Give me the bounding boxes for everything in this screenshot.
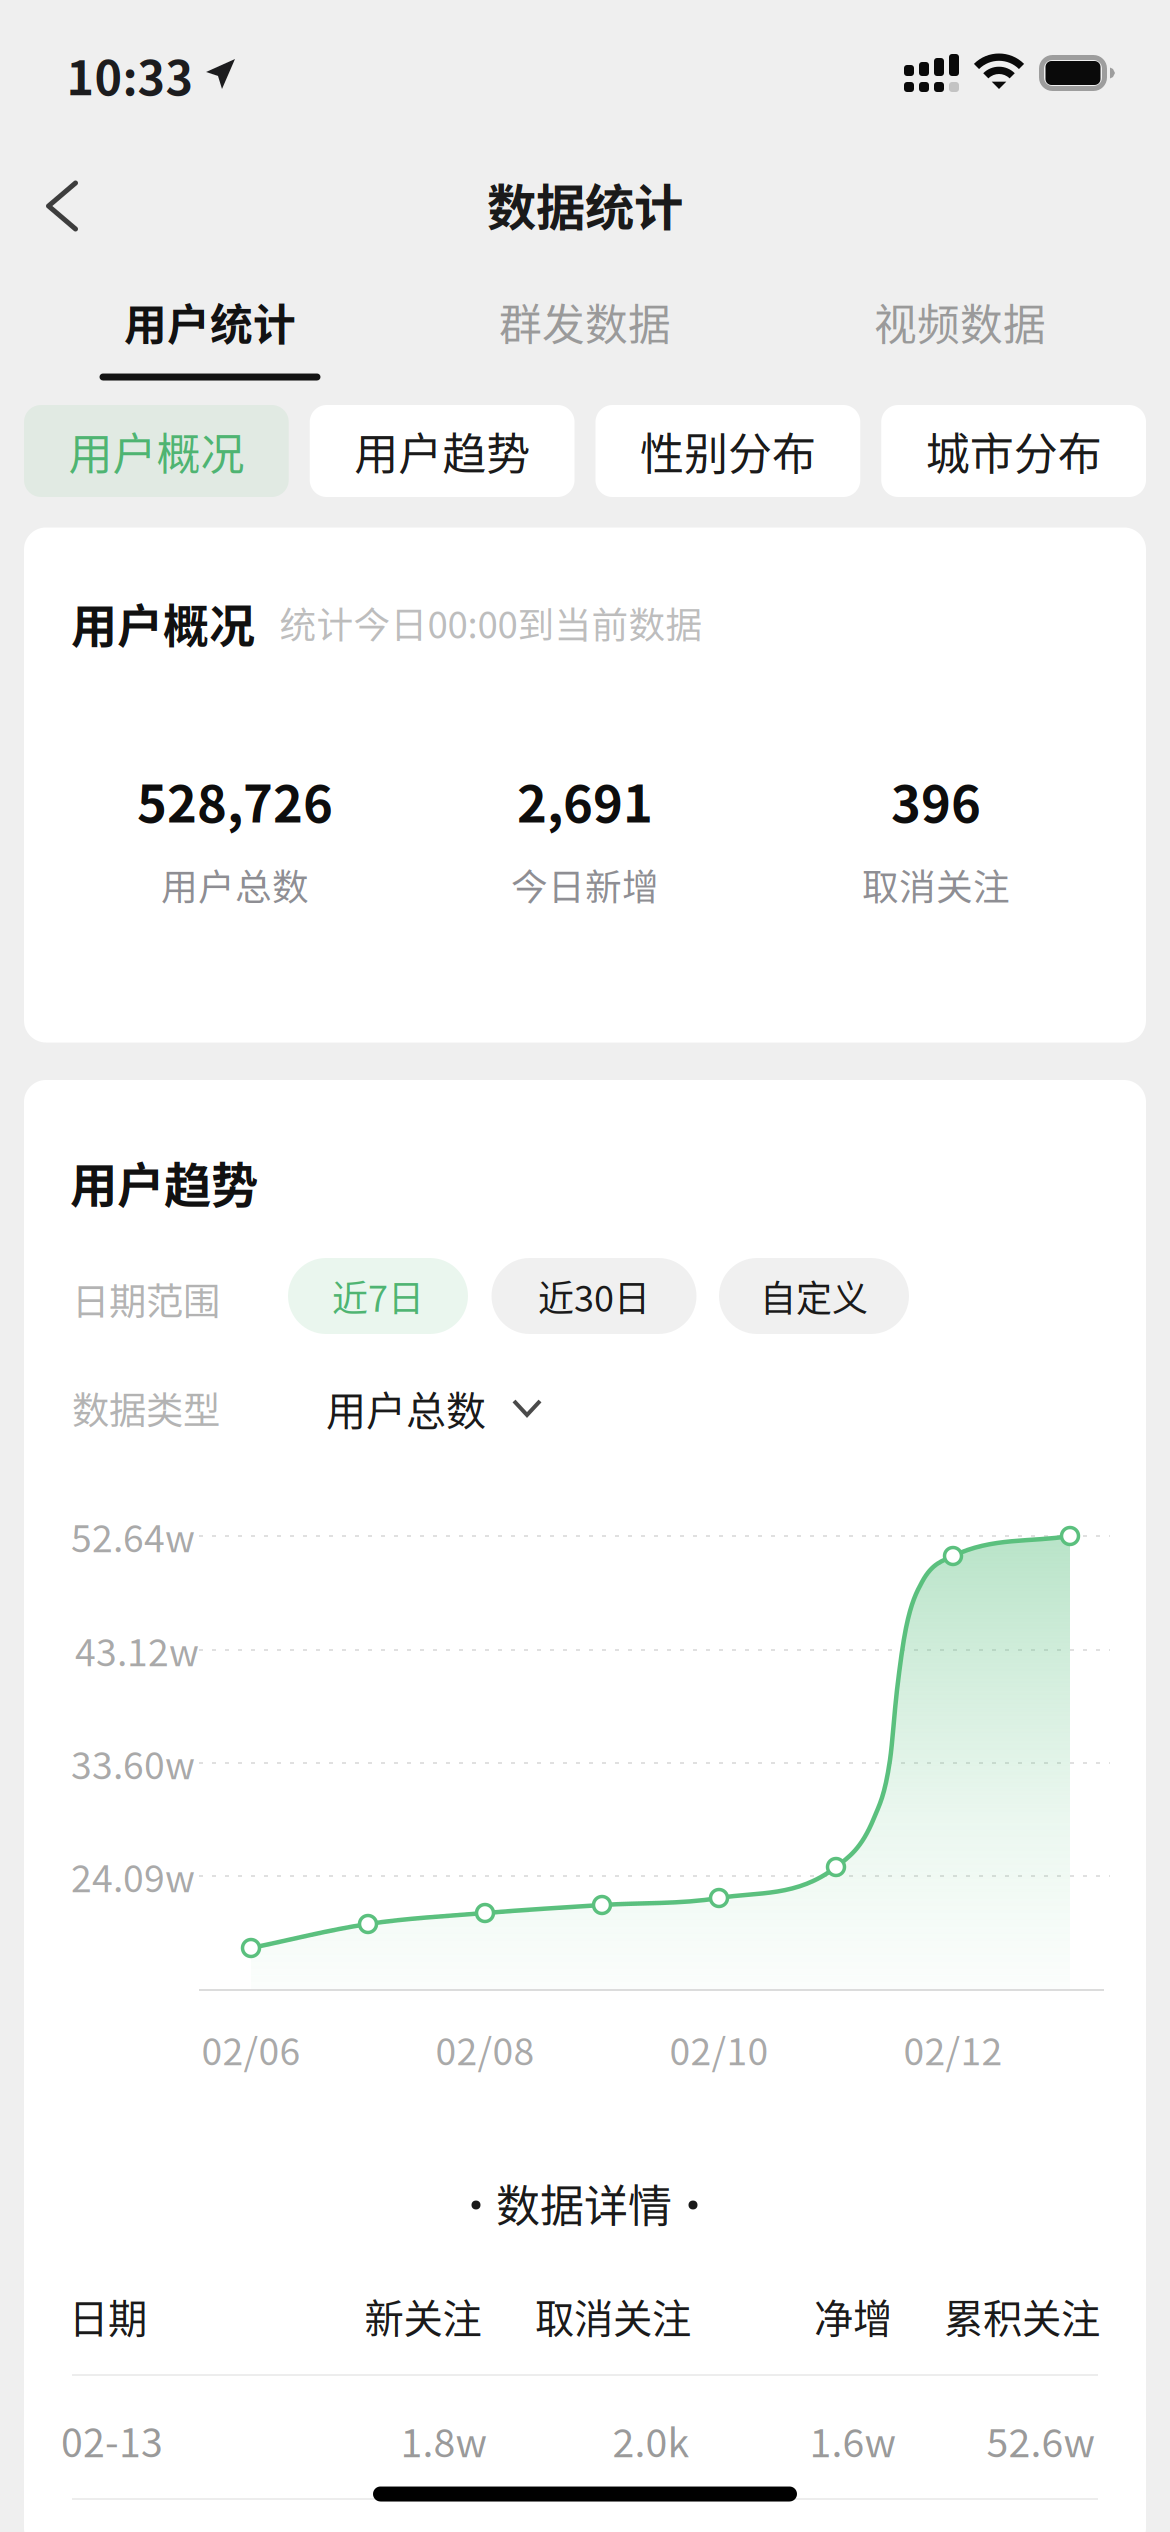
- button[interactable]: 群发数据: [397, 278, 772, 384]
- staticText: 用户概况: [68, 419, 244, 483]
- staticText: 近7日: [332, 1270, 424, 1322]
- staticText: 数据统计: [487, 168, 683, 240]
- staticText: 用户统计: [124, 291, 296, 353]
- staticText: 02/06: [201, 2022, 300, 2076]
- staticText: 统计今日00:00到当前数据: [279, 596, 702, 649]
- staticText: 今日新增: [511, 858, 659, 911]
- staticText: 新关注: [364, 2287, 481, 2344]
- staticText: 净增: [814, 2287, 892, 2344]
- staticText: 528,726: [137, 764, 333, 837]
- button[interactable]: 用户统计: [22, 278, 397, 384]
- staticText: 数据详情: [496, 2171, 672, 2235]
- staticText: 用户趋势: [70, 1148, 258, 1216]
- staticText: 396: [891, 764, 981, 837]
- staticText: 城市分布: [926, 419, 1102, 483]
- staticText: 日期: [69, 2287, 147, 2344]
- staticText: 02-13: [61, 2411, 163, 2468]
- staticText: 视频数据: [874, 291, 1046, 353]
- staticText: 1.8w: [400, 2411, 487, 2468]
- button[interactable]: 近30日: [491, 1258, 696, 1334]
- button[interactable]: 视频数据: [772, 278, 1147, 384]
- staticText: 取消关注: [862, 858, 1010, 911]
- staticText: 用户总数: [161, 858, 309, 911]
- staticText: 用户趋势: [354, 419, 530, 483]
- button[interactable]: 用户总数: [326, 1377, 542, 1439]
- staticText: 用户概况: [71, 589, 255, 656]
- staticText: 性别分布: [640, 419, 816, 483]
- staticText: 1.6w: [809, 2411, 896, 2468]
- button[interactable]: 用户趋势: [310, 405, 575, 497]
- staticText: 近30日: [538, 1270, 650, 1322]
- button[interactable]: 用户概况: [24, 405, 289, 497]
- staticText: 02/10: [669, 2022, 768, 2076]
- button[interactable]: Back: [7, 151, 117, 261]
- staticText: 自定义: [760, 1270, 868, 1322]
- staticText: 取消关注: [535, 2287, 691, 2344]
- button[interactable]: 自定义: [719, 1258, 909, 1334]
- staticText: 用户总数: [326, 1379, 486, 1437]
- staticText: 02/12: [903, 2022, 1002, 2076]
- staticText: 日期范围: [72, 1272, 220, 1326]
- staticText: 10:33: [66, 41, 193, 109]
- staticText: 33.60w: [71, 1736, 195, 1790]
- button[interactable]: 近7日: [288, 1258, 468, 1334]
- button[interactable]: 城市分布: [881, 405, 1146, 497]
- staticText: 群发数据: [499, 291, 671, 353]
- button[interactable]: 性别分布: [595, 405, 860, 497]
- staticText: 52.6w: [986, 2411, 1095, 2468]
- staticText: 2,691: [517, 764, 653, 837]
- staticText: 累积关注: [944, 2287, 1100, 2344]
- staticText: 43.12w: [75, 1623, 199, 1677]
- staticText: 数据类型: [72, 1381, 220, 1435]
- staticText: 2.0k: [612, 2411, 689, 2468]
- staticText: 52.64w: [71, 1509, 195, 1563]
- staticText: 02/08: [435, 2022, 534, 2076]
- staticText: 24.09w: [71, 1849, 195, 1903]
